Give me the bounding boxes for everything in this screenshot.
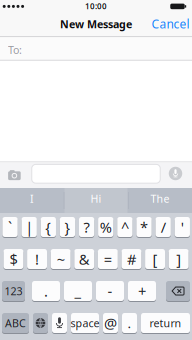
- button[interactable]: _: [64, 280, 92, 302]
- staticText: To:: [8, 43, 22, 57]
- staticText: Hi: [90, 191, 101, 206]
- staticText: 123: [4, 284, 22, 298]
- button[interactable]: The: [130, 186, 190, 211]
- staticText: _: [74, 281, 81, 301]
- staticText: |: [25, 217, 33, 237]
- button[interactable]: .: [32, 280, 60, 302]
- button[interactable]: {: [41, 216, 56, 238]
- button[interactable]: *: [136, 216, 152, 238]
- staticText: !: [35, 249, 39, 269]
- staticText: ABC: [5, 316, 26, 330]
- staticText: 10:00: [85, 1, 107, 11]
- button[interactable]: ': [175, 216, 190, 238]
- button[interactable]: space: [71, 312, 99, 334]
- staticText: ?: [84, 217, 90, 237]
- button[interactable]: [8, 169, 21, 181]
- button[interactable]: [32, 164, 160, 183]
- button[interactable]: %: [98, 216, 113, 238]
- button[interactable]: 123: [2, 280, 25, 302]
- staticText: &: [79, 249, 90, 269]
- staticText: ]: [176, 249, 181, 269]
- staticText: ^: [121, 217, 129, 237]
- button[interactable]: }: [60, 216, 75, 238]
- staticText: =: [104, 249, 112, 269]
- staticText: .: [127, 314, 131, 332]
- button[interactable]: [168, 166, 182, 180]
- button[interactable]: Cancel: [151, 16, 189, 32]
- button[interactable]: .: [122, 312, 137, 334]
- staticText: -: [107, 281, 112, 301]
- button[interactable]: ]: [169, 248, 189, 270]
- staticText: /: [161, 217, 166, 237]
- button[interactable]: `: [2, 216, 18, 238]
- button[interactable]: I: [2, 186, 62, 211]
- button[interactable]: [: [145, 248, 165, 270]
- button[interactable]: +: [128, 280, 156, 302]
- staticText: +: [138, 281, 146, 301]
- staticText: %: [100, 217, 112, 237]
- staticText: }: [64, 217, 70, 237]
- staticText: New Message: [60, 17, 132, 31]
- button[interactable]: ?: [79, 216, 94, 238]
- staticText: [: [153, 249, 158, 269]
- button[interactable]: Hi: [66, 186, 126, 211]
- staticText: #: [127, 249, 136, 269]
- staticText: The: [150, 191, 169, 206]
- button[interactable]: ABC: [2, 312, 29, 334]
- button[interactable]: @: [103, 312, 118, 334]
- button[interactable]: #: [121, 248, 141, 270]
- staticText: {: [45, 217, 51, 237]
- staticText: space: [70, 316, 99, 330]
- button[interactable]: &: [74, 248, 94, 270]
- staticText: `: [8, 217, 12, 237]
- button[interactable]: [166, 280, 190, 302]
- button[interactable]: |: [21, 216, 37, 238]
- staticText: ': [181, 217, 184, 237]
- button[interactable]: ^: [117, 216, 132, 238]
- button[interactable]: [52, 312, 67, 334]
- staticText: $: [9, 249, 17, 269]
- staticText: return: [149, 316, 181, 330]
- staticText: *: [140, 217, 148, 237]
- staticText: ~: [57, 249, 65, 269]
- button[interactable]: return: [141, 312, 190, 334]
- button[interactable]: [33, 312, 48, 334]
- button[interactable]: -: [96, 280, 124, 302]
- button[interactable]: !: [27, 248, 47, 270]
- button[interactable]: =: [98, 248, 118, 270]
- button[interactable]: To:: [8, 38, 188, 61]
- button[interactable]: ~: [51, 248, 71, 270]
- staticText: I: [30, 191, 34, 206]
- button[interactable]: $: [3, 248, 23, 270]
- staticText: @: [104, 313, 117, 333]
- staticText: Cancel: [151, 16, 189, 32]
- button[interactable]: /: [155, 216, 171, 238]
- staticText: .: [44, 281, 48, 301]
